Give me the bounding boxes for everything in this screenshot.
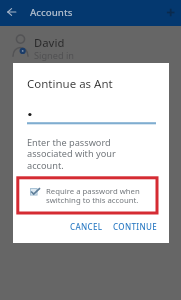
button[interactable]: Back xyxy=(3,3,21,21)
button[interactable]: CANCEL xyxy=(66,217,107,236)
button[interactable]: David xyxy=(0,30,181,60)
staticText: CANCEL xyxy=(70,221,103,232)
staticText: Signed in xyxy=(34,49,75,62)
staticText: David xyxy=(34,35,65,50)
staticText: CONTINUE xyxy=(113,221,158,232)
staticText: Continue as Ant xyxy=(27,76,113,92)
button[interactable]: Require a password when switching to thi… xyxy=(29,186,157,206)
button[interactable]: CONTINUE xyxy=(109,217,162,236)
staticText: Accounts xyxy=(30,6,73,19)
staticText: Enter the password associated with your … xyxy=(27,136,116,172)
button[interactable]: Add account xyxy=(162,3,180,21)
staticText: Require a password when switching to thi… xyxy=(46,186,140,206)
